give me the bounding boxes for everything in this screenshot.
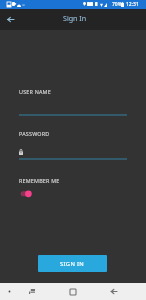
button[interactable]: Back: [2, 11, 18, 27]
staticText: SIGN IN: [60, 260, 85, 268]
staticText: USER NAME: [19, 88, 51, 95]
button[interactable]: Back: [106, 284, 121, 299]
button[interactable]: SIGN IN: [38, 255, 107, 272]
staticText: REMEMBER ME: [19, 177, 60, 184]
staticText: 70%: [112, 1, 122, 8]
staticText: 12:31: [126, 1, 139, 8]
staticText: PASSWORD: [19, 130, 50, 137]
button[interactable]: Password field: [19, 128, 127, 160]
button[interactable]: Assistant: [2, 284, 17, 299]
staticText: Sign In: [63, 13, 87, 23]
button[interactable]: Recent apps: [65, 284, 80, 299]
button[interactable]: Remember me: [17, 175, 127, 200]
button[interactable]: User name field: [19, 86, 127, 116]
button[interactable]: Hide keyboard: [24, 284, 39, 299]
